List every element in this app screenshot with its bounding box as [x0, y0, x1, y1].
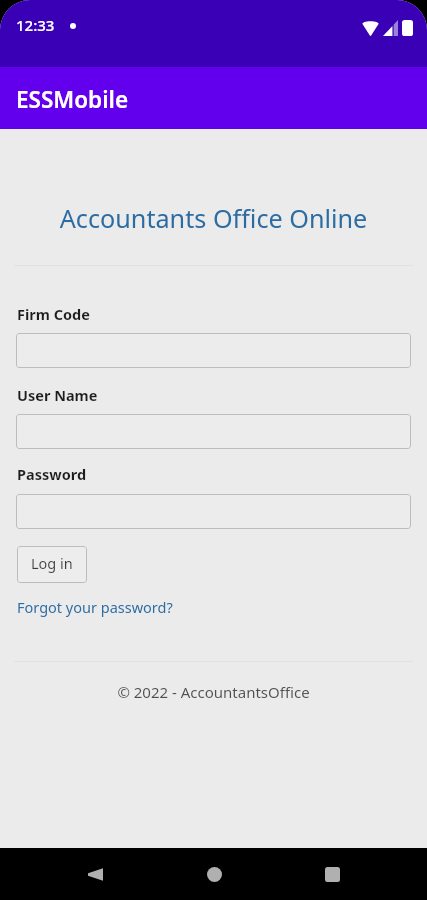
button[interactable]: Home: [188, 848, 240, 900]
staticText: Firm Code: [17, 304, 90, 324]
button[interactable]: Forgot your password?: [17, 597, 173, 617]
button[interactable]: [16, 333, 411, 368]
staticText: ESSMobile: [16, 84, 129, 115]
staticText: 12:33: [16, 15, 55, 35]
staticText: Password: [17, 464, 87, 484]
staticText: © 2022 - AccountantsOffice: [0, 682, 427, 702]
button[interactable]: [16, 494, 411, 529]
button[interactable]: [16, 414, 411, 449]
staticText: User Name: [17, 385, 98, 405]
staticText: Log in: [31, 553, 73, 573]
button[interactable]: Recents: [306, 848, 358, 900]
staticText: Forgot your password?: [17, 597, 173, 617]
button[interactable]: Log in: [17, 546, 87, 583]
button[interactable]: Back: [68, 848, 120, 900]
staticText: Accountants Office Online: [0, 201, 427, 235]
